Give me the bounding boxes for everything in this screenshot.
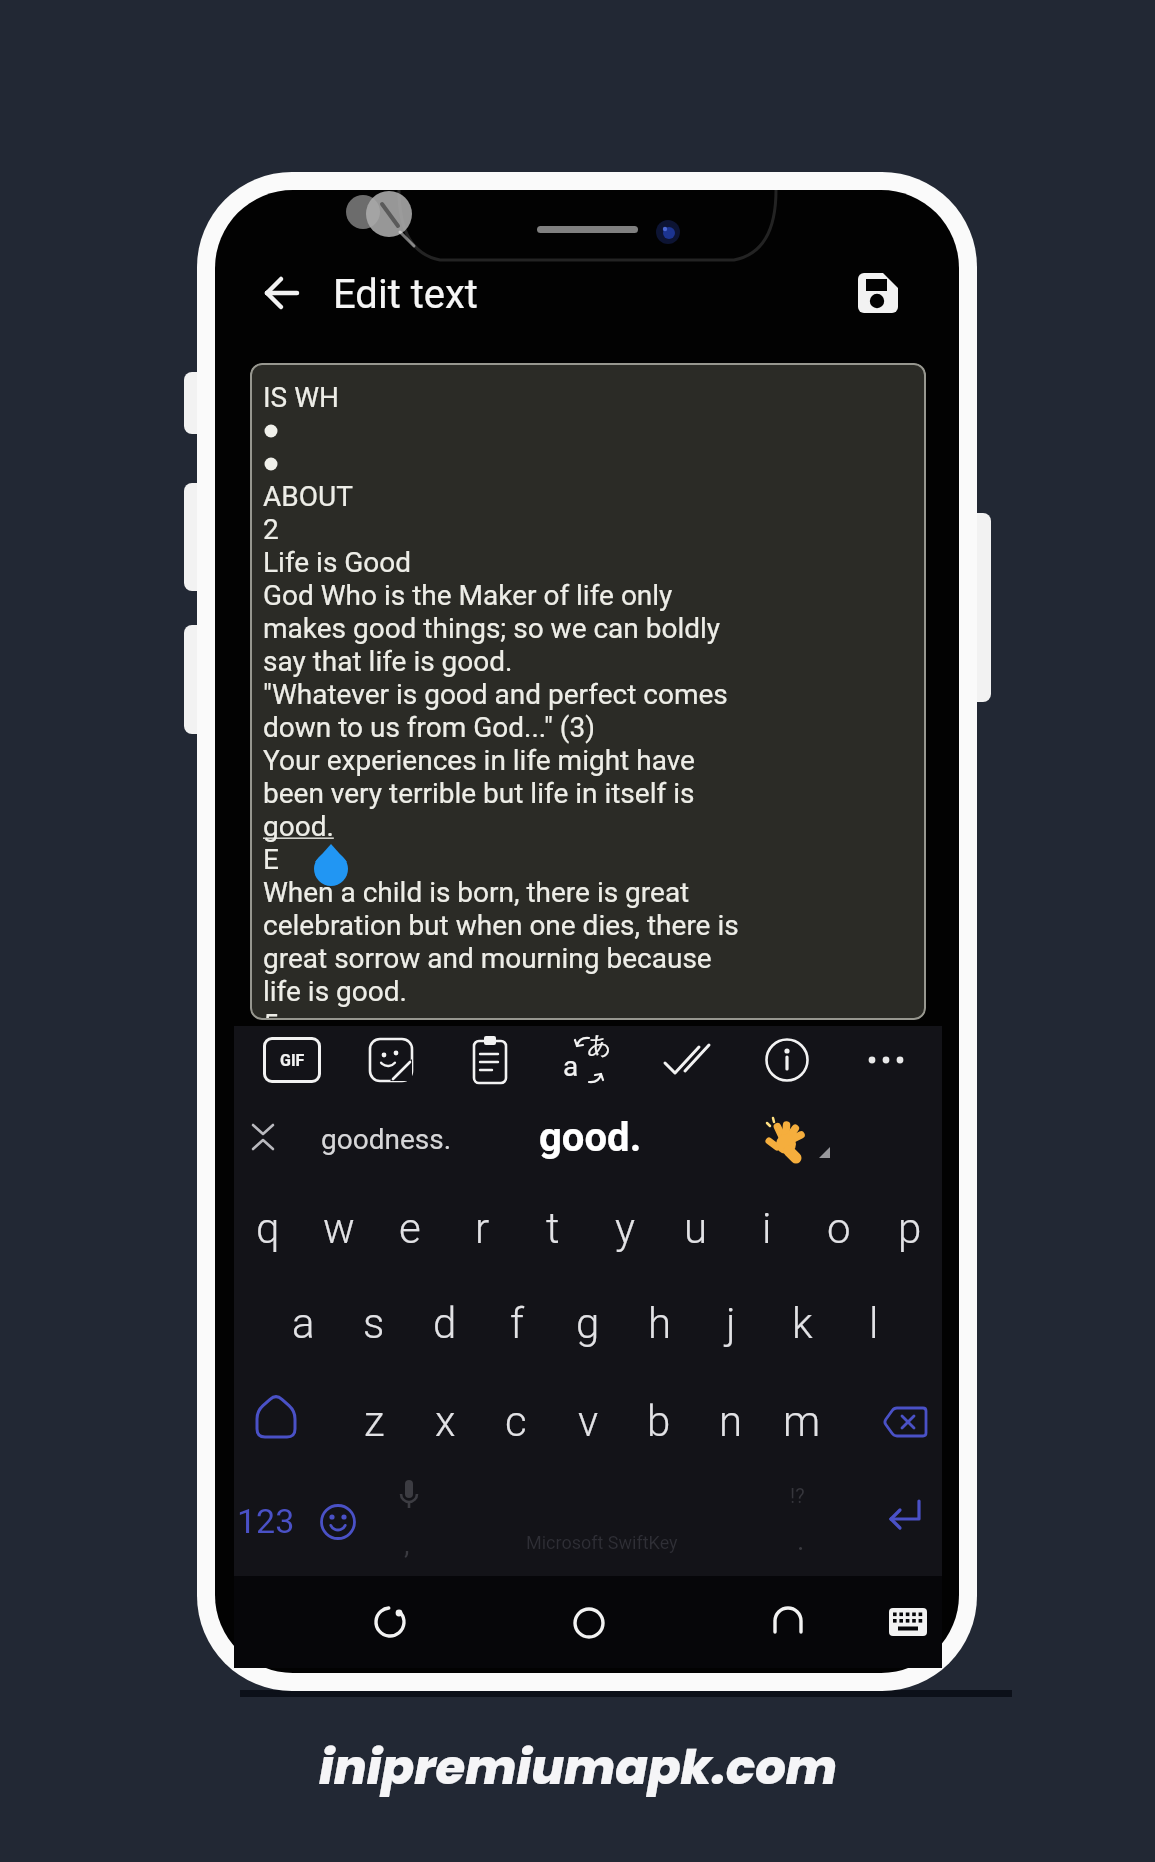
button[interactable] <box>862 1050 910 1070</box>
button[interactable]: 123 <box>223 1493 309 1549</box>
staticText: , <box>404 1528 410 1561</box>
staticText: i <box>762 1204 772 1253</box>
staticText: b <box>647 1397 671 1446</box>
staticText: k <box>792 1299 813 1348</box>
button[interactable]: j <box>698 1283 764 1363</box>
button[interactable]: IS WH ABOUT 2 Life is Good God Who is th… <box>250 363 926 1020</box>
button[interactable]: s <box>341 1283 407 1363</box>
button[interactable]: b <box>626 1381 692 1461</box>
staticText: d <box>433 1299 457 1348</box>
staticText: y <box>615 1204 635 1253</box>
staticText: e <box>399 1204 421 1253</box>
button[interactable]: Microsoft SwiftKey <box>437 1512 767 1572</box>
button[interactable]: f <box>484 1283 550 1363</box>
staticText: o <box>827 1204 851 1253</box>
button[interactable]: goodness. <box>296 1113 476 1165</box>
button[interactable]: a <box>270 1283 336 1363</box>
staticText: goodness. <box>321 1123 452 1156</box>
button[interactable]: y <box>592 1188 658 1268</box>
button[interactable]: i <box>734 1188 800 1268</box>
button[interactable] <box>561 1595 617 1651</box>
button[interactable] <box>246 1116 280 1158</box>
staticText: !? <box>790 1484 805 1507</box>
button[interactable]: x <box>412 1381 478 1461</box>
staticText: t <box>546 1204 560 1253</box>
button[interactable]: z <box>341 1381 407 1461</box>
staticText: c <box>505 1397 527 1446</box>
staticText: inipremiumapk.com <box>319 1734 837 1801</box>
staticText: s <box>363 1299 385 1348</box>
button[interactable]: e <box>377 1188 443 1268</box>
button[interactable]: m <box>769 1381 835 1461</box>
button[interactable]: p <box>877 1188 943 1268</box>
staticText: g <box>576 1299 600 1348</box>
button[interactable] <box>466 1034 514 1086</box>
button[interactable]: l <box>841 1283 907 1363</box>
button[interactable] <box>875 1397 935 1447</box>
staticText: a <box>292 1299 315 1348</box>
button[interactable]: t <box>520 1188 586 1268</box>
button[interactable]: r <box>449 1188 515 1268</box>
button[interactable] <box>850 265 906 321</box>
button[interactable] <box>367 1036 415 1084</box>
staticText: a <box>563 1050 579 1083</box>
staticText: h <box>648 1299 672 1348</box>
button[interactable] <box>880 1599 936 1645</box>
button[interactable]: h <box>627 1283 693 1363</box>
button[interactable] <box>310 1494 366 1550</box>
button[interactable] <box>362 1594 418 1650</box>
button[interactable]: c <box>483 1381 549 1461</box>
button[interactable]: u <box>663 1188 729 1268</box>
staticText: . <box>797 1524 805 1557</box>
staticText: あ <box>587 1030 612 1060</box>
staticText: 123 <box>237 1501 295 1541</box>
button[interactable] <box>763 1036 811 1084</box>
staticText: w <box>323 1204 355 1253</box>
staticText: n <box>719 1397 743 1446</box>
button[interactable]: GIF <box>263 1037 321 1083</box>
staticText: Microsoft SwiftKey <box>526 1532 678 1553</box>
staticText: r <box>475 1204 490 1253</box>
staticText: good. <box>539 1114 642 1161</box>
staticText: x <box>435 1397 456 1446</box>
button[interactable]: n <box>698 1381 764 1461</box>
button[interactable] <box>248 1385 304 1449</box>
button[interactable]: o <box>806 1188 872 1268</box>
button[interactable] <box>760 1595 816 1651</box>
button[interactable] <box>873 1489 933 1545</box>
staticText: v <box>578 1397 599 1446</box>
button[interactable] <box>254 265 310 321</box>
staticText: p <box>898 1204 922 1253</box>
staticText: Edit text <box>333 271 478 318</box>
staticText: f <box>510 1299 524 1348</box>
staticText: z <box>364 1397 385 1446</box>
button[interactable] <box>763 1115 815 1163</box>
button[interactable]: w <box>306 1188 372 1268</box>
staticText: j <box>726 1299 736 1348</box>
button[interactable]: k <box>769 1283 835 1363</box>
button[interactable]: q <box>235 1188 301 1268</box>
button[interactable]: good. <box>505 1109 675 1165</box>
button[interactable]: d <box>412 1283 478 1363</box>
button[interactable] <box>659 1036 717 1084</box>
staticText: m <box>783 1397 821 1446</box>
button[interactable]: g <box>555 1283 621 1363</box>
button[interactable]: v <box>555 1381 621 1461</box>
staticText: u <box>684 1204 708 1253</box>
staticText: GIF <box>280 1051 305 1070</box>
staticText: IS WH ABOUT 2 Life is Good God Who is th… <box>263 381 739 1020</box>
staticText: q <box>256 1204 280 1253</box>
button[interactable]: a <box>561 1032 617 1088</box>
staticText: l <box>869 1299 879 1348</box>
